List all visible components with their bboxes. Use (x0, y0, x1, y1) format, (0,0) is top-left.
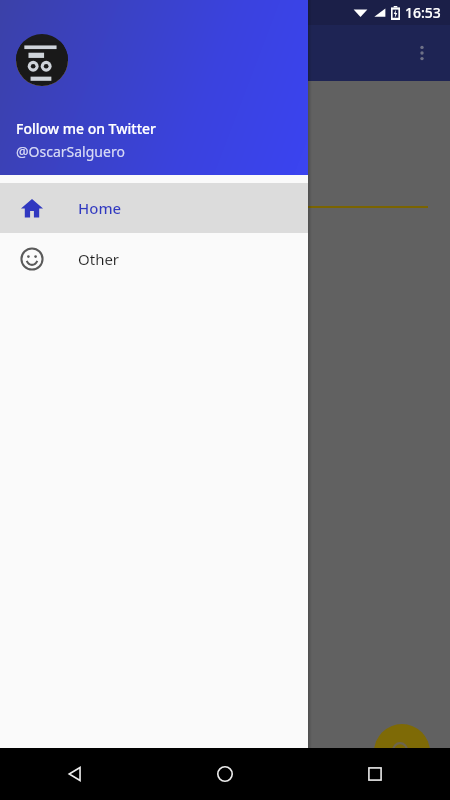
staticText: Complete… (72, 40, 176, 66)
button[interactable]: Recent apps (300, 748, 450, 800)
staticText: Follow me on Twitter (16, 119, 156, 138)
button[interactable]: More options (402, 33, 442, 73)
button[interactable]: Profile photo (16, 34, 68, 86)
button[interactable]: Search (374, 724, 430, 780)
button[interactable]: Other (0, 233, 308, 285)
button[interactable]: Home (150, 748, 300, 800)
button[interactable]: Back (0, 748, 150, 800)
staticText: Home (78, 198, 122, 218)
button[interactable]: Home (0, 183, 308, 233)
staticText: Other (78, 249, 120, 269)
staticText: @OscarSalguero (16, 142, 125, 161)
staticText: 16:53 (405, 3, 441, 22)
